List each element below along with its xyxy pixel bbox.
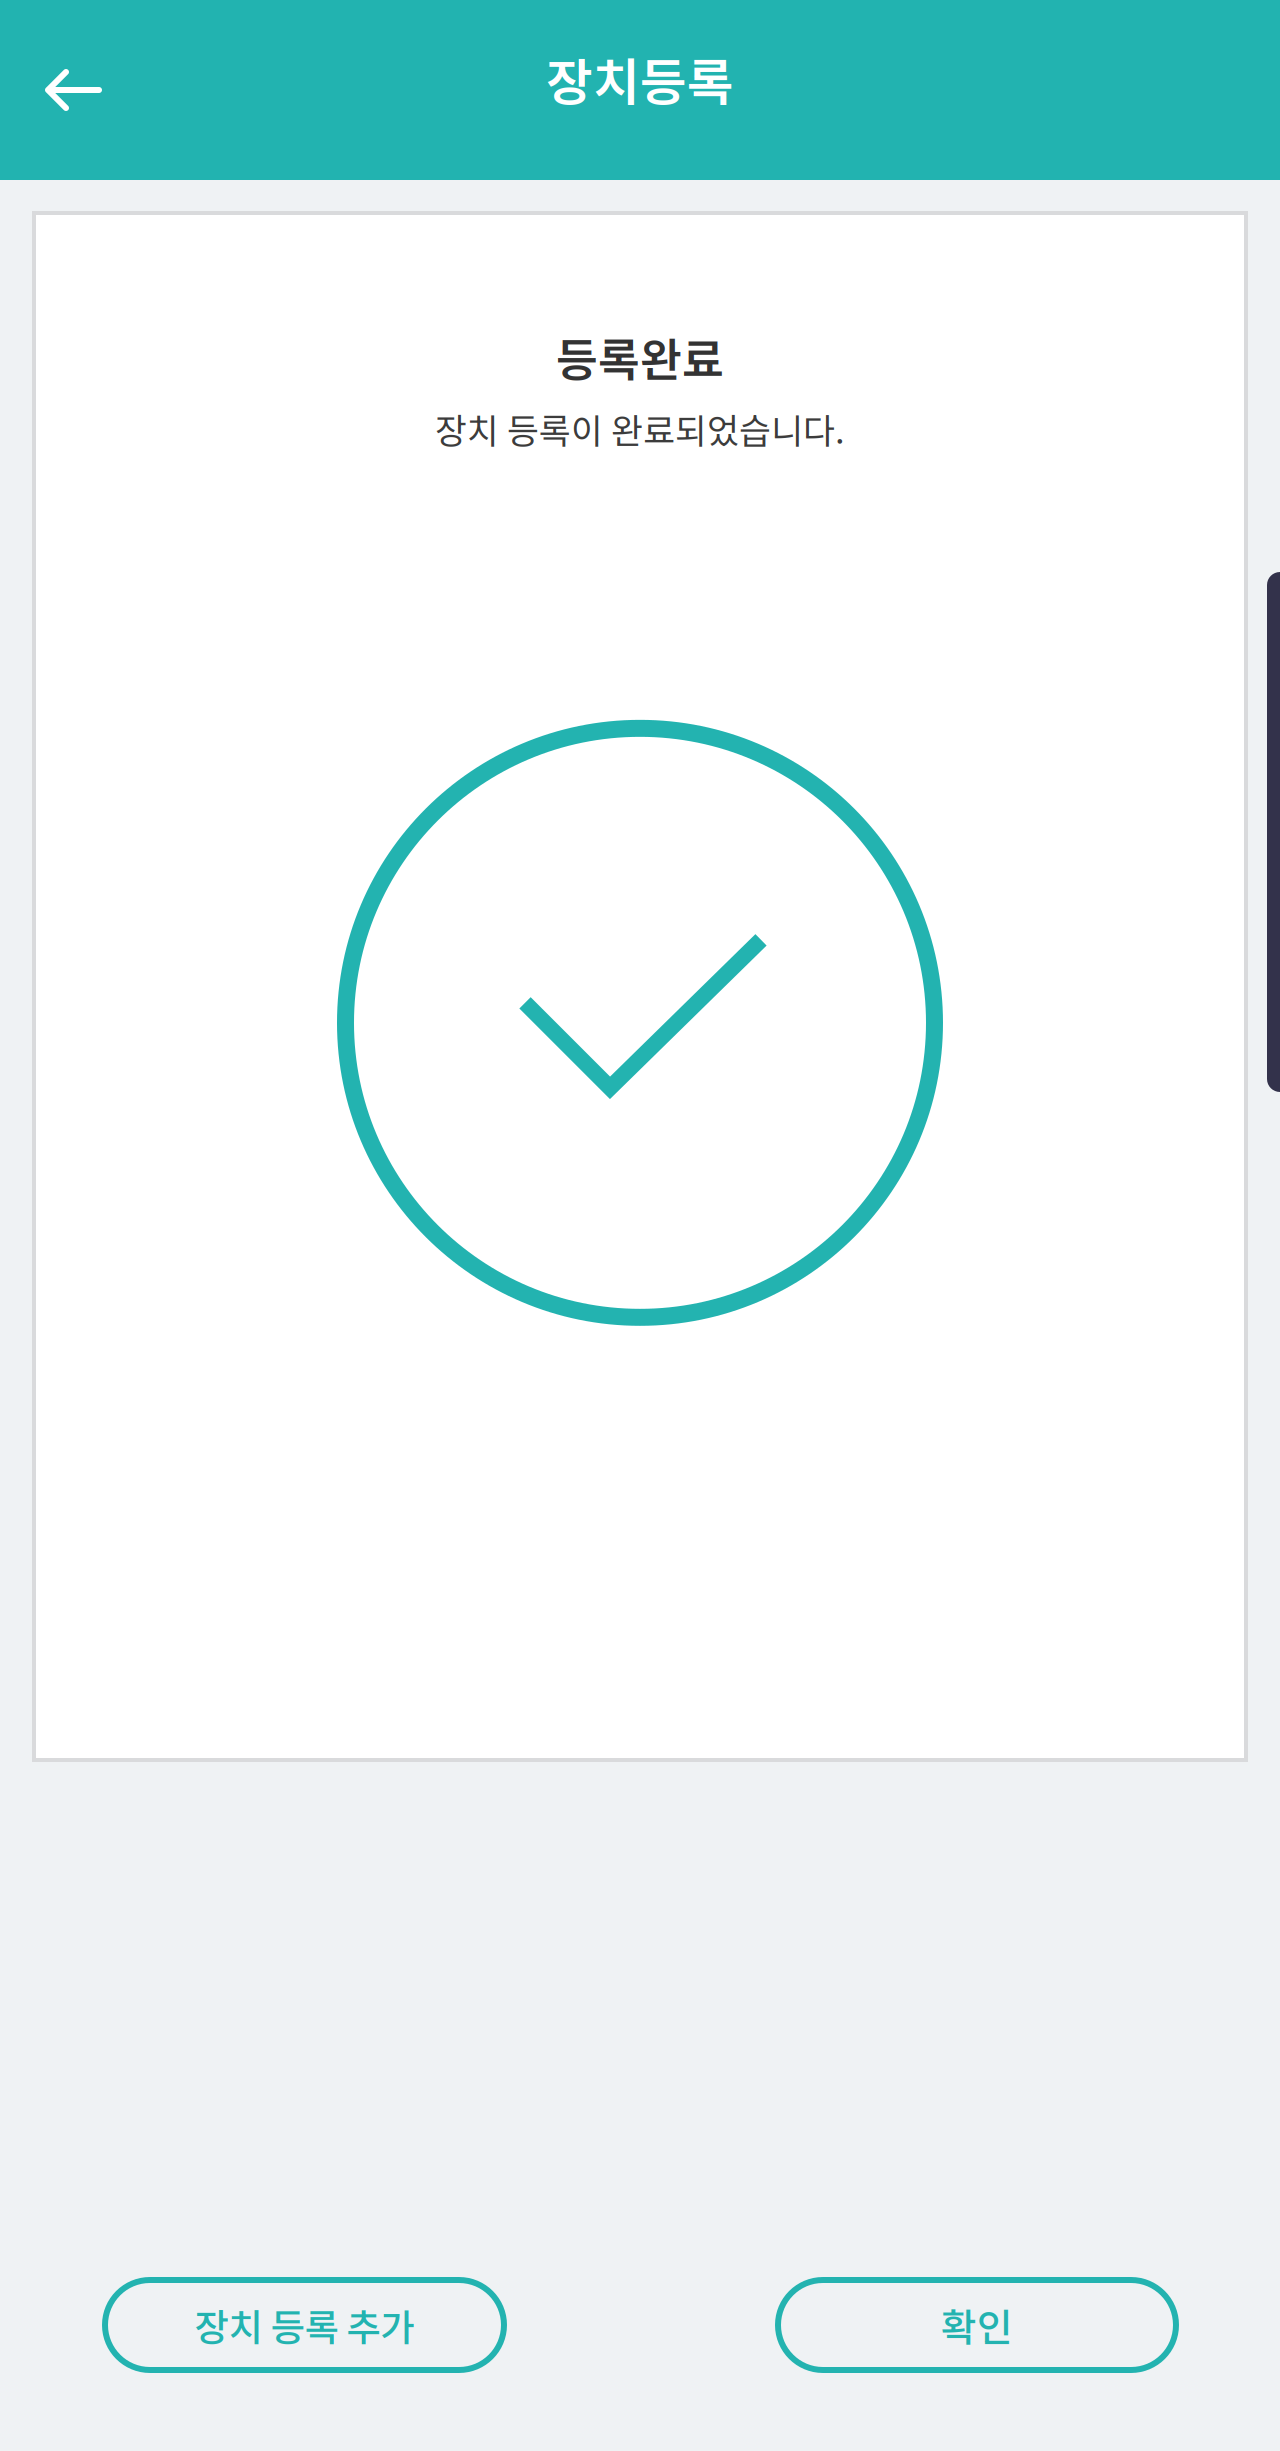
button[interactable]: 확인 (775, 2277, 1179, 2373)
staticText: 장치 등록 추가 (194, 2298, 414, 2352)
staticText: 확인 (941, 2297, 1013, 2353)
button[interactable]: 장치 등록 추가 (102, 2277, 507, 2373)
staticText: 장치등록 (546, 42, 734, 116)
button[interactable]: 뒤로 가기 (9, 30, 129, 150)
staticText: 장치 등록이 완료되었습니다. (435, 404, 845, 454)
staticText: 등록완료 (556, 324, 724, 390)
